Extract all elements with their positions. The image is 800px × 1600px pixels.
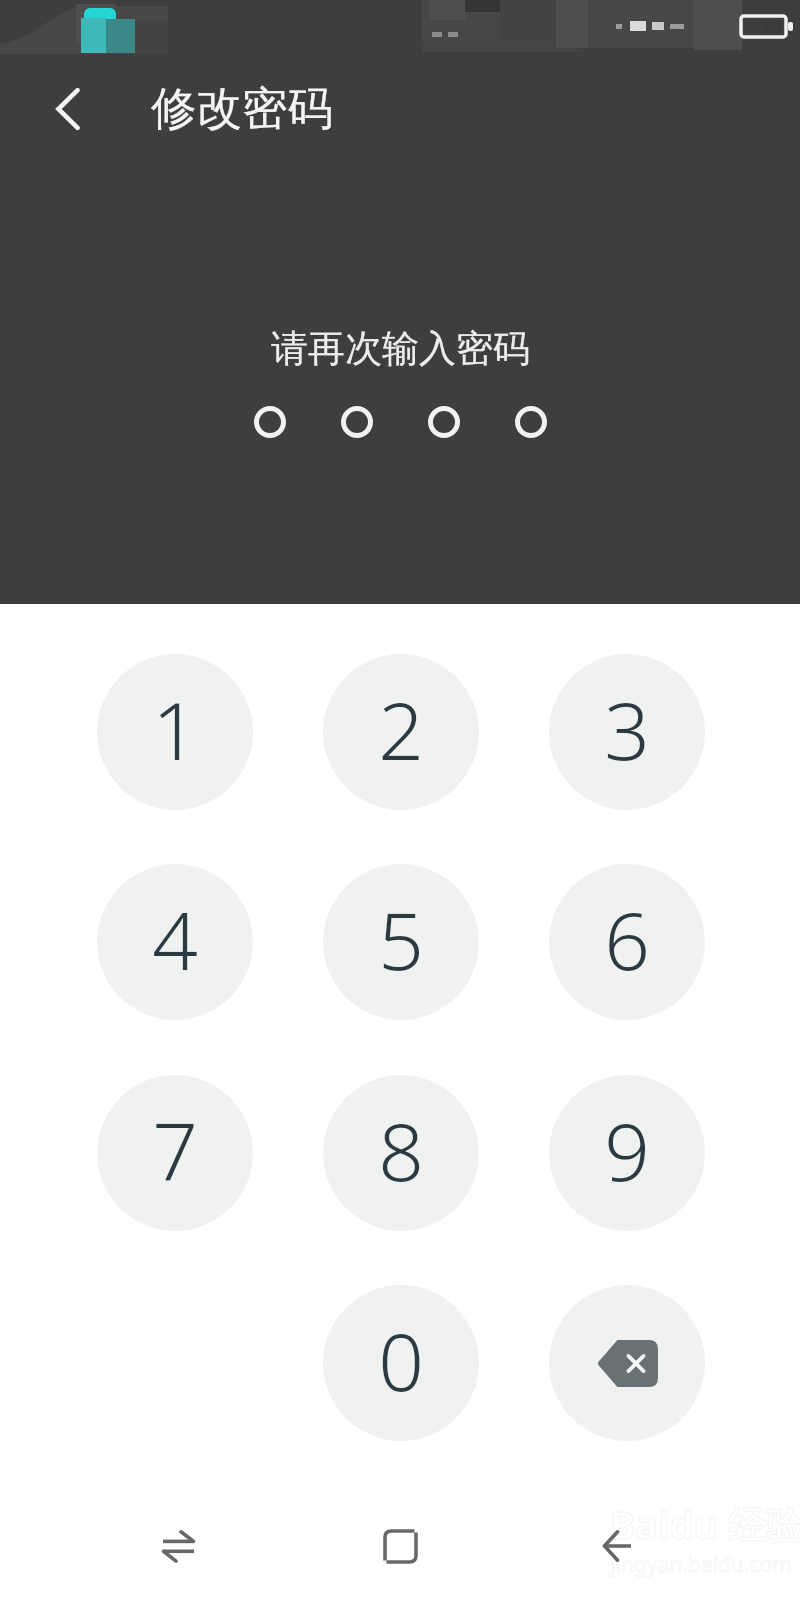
button[interactable]: 8 [323, 1075, 479, 1231]
button[interactable]: 1 [97, 654, 253, 810]
staticText: 修改密码 [151, 80, 333, 137]
staticText: 5 [378, 884, 424, 993]
button[interactable]: Back [549, 1492, 685, 1600]
staticText: 4 [152, 884, 198, 993]
staticText: 1 [152, 674, 198, 783]
staticText: 6 [604, 884, 650, 993]
button[interactable]: 2 [323, 654, 479, 810]
staticText: 请再次输入密码 [271, 325, 530, 372]
button[interactable]: 0 [323, 1285, 479, 1441]
button[interactable]: 5 [323, 864, 479, 1020]
button[interactable]: 4 [97, 864, 253, 1020]
button[interactable]: Backspace [549, 1285, 705, 1441]
button[interactable]: 9 [549, 1075, 705, 1231]
staticText: Baidu 经验 [610, 1498, 800, 1550]
button[interactable]: 3 [549, 654, 705, 810]
staticText: 3 [604, 674, 650, 783]
staticText: jingyan.baidu.com [610, 1550, 792, 1579]
staticText: 2 [378, 674, 424, 783]
button[interactable]: Back [20, 61, 116, 157]
staticText: 0 [378, 1305, 424, 1414]
staticText: 9 [604, 1095, 650, 1204]
button[interactable]: Recent apps [110, 1492, 246, 1600]
button[interactable]: Home [332, 1492, 468, 1600]
staticText: 8 [378, 1095, 424, 1204]
button[interactable]: 7 [97, 1075, 253, 1231]
staticText: 7 [152, 1095, 198, 1204]
button[interactable]: 6 [549, 864, 705, 1020]
